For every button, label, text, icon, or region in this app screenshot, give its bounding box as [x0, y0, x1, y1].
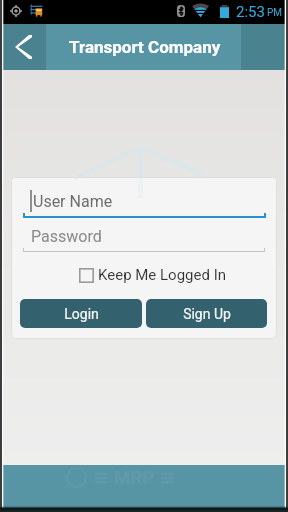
- staticText: ≡ MRP ≡: [93, 466, 176, 488]
- staticText: User Name: [33, 192, 113, 211]
- staticText: 2:53: [236, 3, 265, 21]
- staticText: Login: [64, 306, 99, 322]
- button[interactable]: User Name: [23, 186, 265, 216]
- button[interactable]: Login: [20, 299, 142, 328]
- button[interactable]: Sign Up: [146, 299, 267, 328]
- staticText: Sign Up: [183, 306, 231, 322]
- staticText: Keep Me Logged In: [98, 266, 227, 284]
- staticText: PM: [267, 7, 283, 19]
- button[interactable]: Back: [0, 24, 46, 70]
- staticText: Password: [31, 227, 102, 246]
- button[interactable]: Transport Company: [46, 24, 241, 70]
- button[interactable]: Password: [23, 222, 265, 251]
- button[interactable]: Keep Me Logged In: [79, 266, 227, 284]
- staticText: Transport Company: [69, 37, 221, 57]
